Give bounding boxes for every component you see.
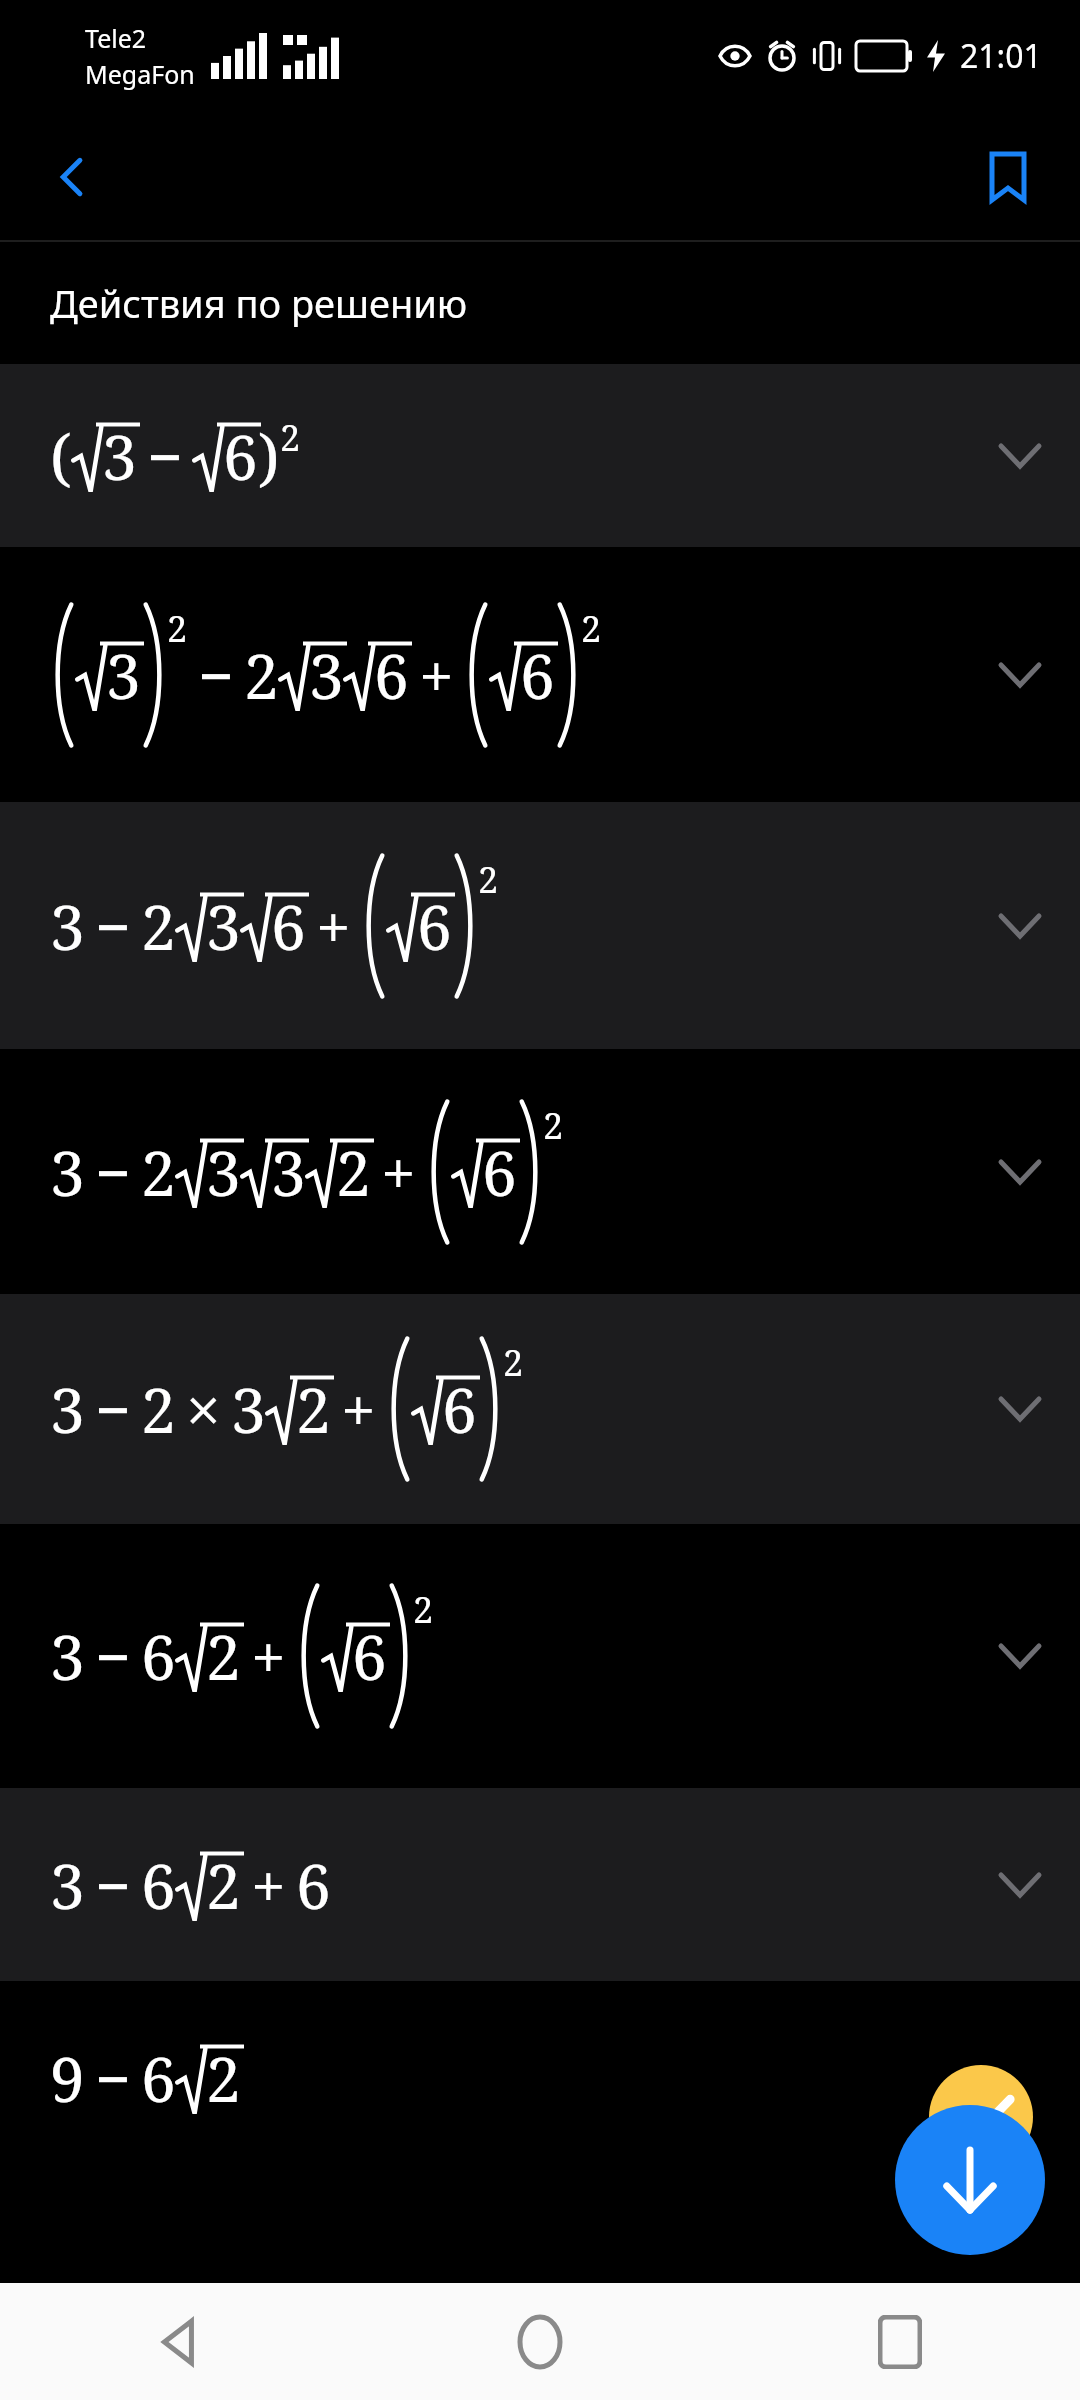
staticText: +	[316, 884, 351, 968]
staticText: 2	[244, 633, 279, 717]
staticText: 2	[206, 1843, 241, 1927]
staticText: −	[95, 1614, 131, 1698]
staticText: −	[95, 1843, 131, 1927]
button[interactable]: Download	[895, 2105, 1045, 2255]
staticText: 2	[336, 1130, 371, 1214]
staticText: 3	[106, 633, 141, 717]
button[interactable]: Recent apps	[720, 2283, 1080, 2400]
staticText: 3	[50, 1843, 85, 1927]
button[interactable]: 3	[0, 1788, 1080, 1981]
staticText: −	[198, 633, 234, 717]
staticText: 3	[206, 1130, 241, 1214]
staticText: −	[95, 884, 131, 968]
staticText: 6	[141, 1614, 176, 1698]
staticText: 6	[271, 884, 306, 968]
staticText: 2	[167, 604, 188, 653]
staticText: 6	[141, 2036, 176, 2120]
staticText: 3	[271, 1130, 306, 1214]
staticText: −	[147, 414, 183, 498]
staticText: 2	[206, 1614, 241, 1698]
staticText: 2	[141, 1367, 176, 1451]
staticText: 3	[50, 1367, 85, 1451]
staticText: 3	[231, 1367, 266, 1451]
staticText: 3	[50, 1130, 85, 1214]
staticText: )	[258, 414, 280, 498]
staticText: 3	[309, 633, 344, 717]
button[interactable]: Back	[0, 2283, 360, 2400]
staticText: +	[341, 1367, 376, 1451]
staticText: 2	[141, 1130, 176, 1214]
staticText: 6	[141, 1843, 176, 1927]
staticText: 6	[482, 1130, 517, 1214]
staticText: 2	[543, 1101, 564, 1150]
staticText: MegaFon	[85, 57, 195, 91]
staticText: 2	[296, 1367, 331, 1451]
staticText: 2	[206, 2036, 241, 2120]
staticText: +	[381, 1130, 416, 1214]
staticText: 6	[223, 414, 258, 498]
staticText: 6	[417, 884, 452, 968]
button[interactable]: Edit	[929, 2065, 1033, 2169]
staticText: Действия по решению	[50, 277, 468, 329]
staticText: 3	[206, 884, 241, 968]
button[interactable]: Home	[360, 2283, 720, 2400]
staticText: 2	[581, 604, 602, 653]
staticText: 3	[50, 1614, 85, 1698]
staticText: 6	[520, 633, 555, 717]
staticText: 21:01	[960, 34, 1042, 78]
button[interactable]: 3	[0, 1294, 1080, 1524]
button[interactable]: Back	[26, 131, 118, 223]
staticText: −	[95, 1130, 131, 1214]
staticText: −	[95, 1367, 131, 1451]
staticText: +	[251, 1843, 286, 1927]
button[interactable]: 3	[0, 802, 1080, 1049]
button[interactable]: 3	[0, 547, 1080, 802]
staticText: 2	[413, 1585, 434, 1634]
staticText: 2	[280, 413, 301, 462]
staticText: (	[50, 414, 72, 498]
staticText: +	[251, 1614, 286, 1698]
staticText: 3	[102, 414, 137, 498]
staticText: ×	[186, 1367, 221, 1451]
staticText: Tele2	[85, 21, 147, 55]
staticText: −	[95, 2036, 131, 2120]
staticText: 6	[296, 1843, 331, 1927]
staticText: 6	[442, 1367, 477, 1451]
button[interactable]: 3	[0, 1524, 1080, 1788]
staticText: 6	[352, 1614, 387, 1698]
staticText: 3	[50, 884, 85, 968]
staticText: 2	[478, 855, 499, 904]
staticText: 2	[141, 884, 176, 968]
button[interactable]: (	[0, 364, 1080, 547]
button[interactable]: Bookmark	[962, 131, 1054, 223]
staticText: +	[419, 633, 454, 717]
staticText: 2	[503, 1338, 524, 1387]
button[interactable]: 9	[0, 1981, 1080, 2174]
staticText: 6	[374, 633, 409, 717]
button[interactable]: 3	[0, 1049, 1080, 1294]
staticText: 9	[50, 2036, 85, 2120]
